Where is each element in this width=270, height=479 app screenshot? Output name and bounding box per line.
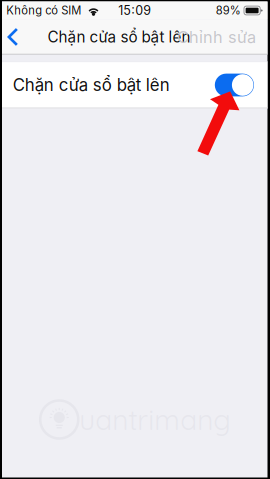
staticText: Chặn cửa sổ bật lên (13, 75, 170, 95)
button[interactable]: Back (2, 19, 27, 54)
staticText: Không có SIM (6, 4, 81, 17)
staticText: 89% (216, 4, 241, 17)
staticText: Chỉnh sửa (177, 27, 256, 47)
button[interactable]: Chỉnh sửa (177, 19, 267, 54)
staticText: Chặn cửa sổ bật lên (47, 28, 190, 46)
staticText: 15:09 (118, 3, 151, 18)
button[interactable]: Chặn cửa sổ bật lên (2, 61, 267, 108)
